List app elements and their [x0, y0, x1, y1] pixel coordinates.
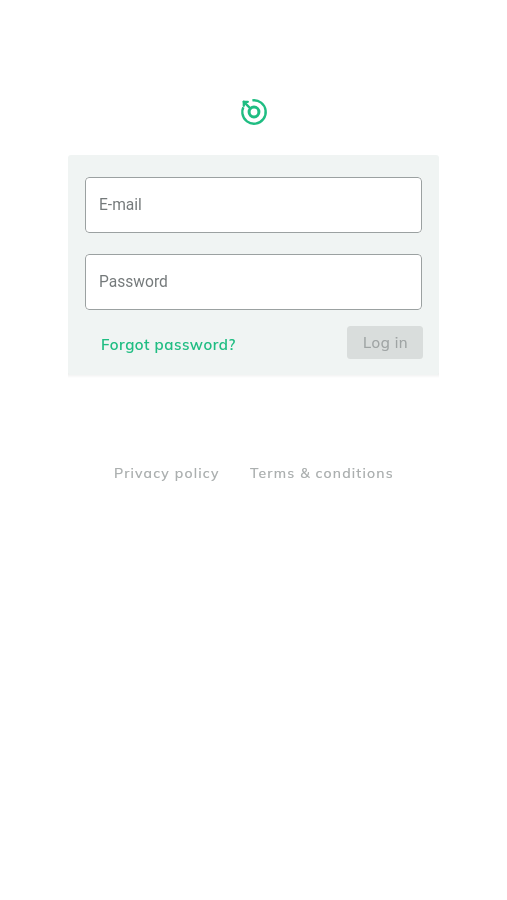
button[interactable]: Password [85, 254, 422, 310]
button[interactable]: Terms & conditions [242, 457, 402, 489]
staticText: Forgot password? [101, 335, 236, 354]
button[interactable]: Privacy policy [106, 457, 228, 489]
staticText: Password [99, 273, 168, 291]
other: App logo [237, 95, 271, 129]
staticText: Log in [363, 333, 408, 352]
staticText: Terms & conditions [250, 464, 394, 482]
staticText: Privacy policy [114, 464, 220, 482]
button[interactable]: Log in [347, 326, 423, 359]
button[interactable]: Forgot password? [90, 327, 247, 362]
staticText: E-mail [99, 196, 142, 214]
button[interactable]: E-mail [85, 177, 422, 233]
